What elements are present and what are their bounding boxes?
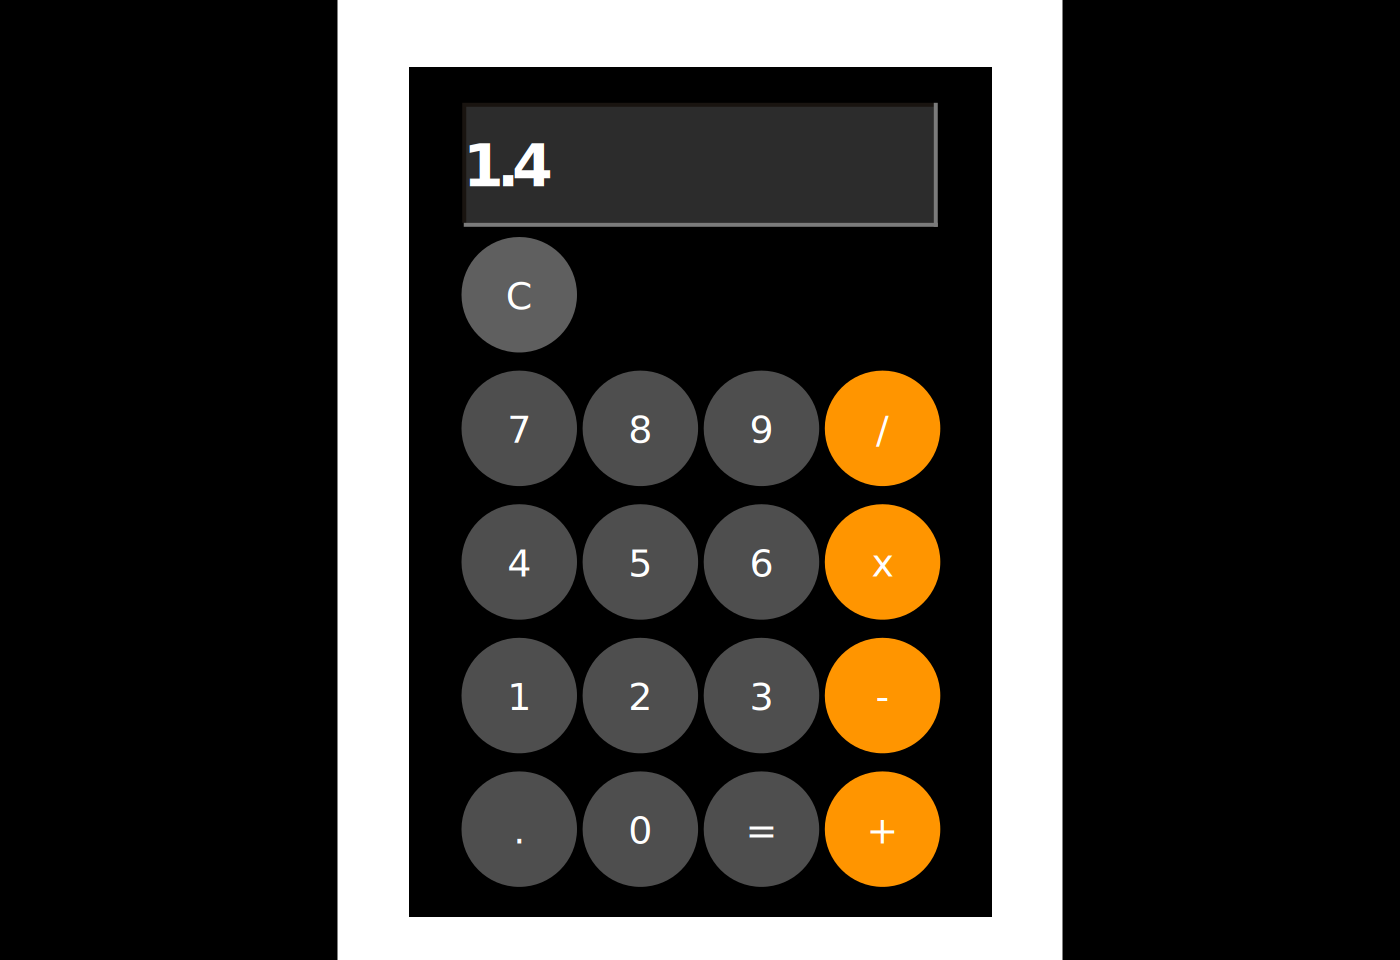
button[interactable]: Decimal point [461, 771, 577, 887]
button[interactable]: Multiply [825, 504, 940, 620]
staticText: 6 [749, 541, 773, 585]
staticText: / [876, 407, 889, 452]
button[interactable]: 1 [461, 638, 577, 753]
button[interactable]: Subtract [825, 638, 940, 753]
staticText: 4 [507, 541, 531, 585]
staticText: 9 [749, 407, 773, 452]
button[interactable]: Clear [461, 237, 577, 352]
button[interactable]: 2 [583, 638, 698, 753]
button[interactable]: 7 [461, 371, 577, 486]
button[interactable]: Divide [825, 371, 940, 486]
button[interactable]: 8 [583, 371, 698, 486]
staticText: = [745, 808, 777, 852]
staticText: 0 [628, 808, 652, 852]
staticText: 3 [749, 675, 773, 719]
staticText: + [866, 808, 898, 852]
button[interactable]: 4 [461, 504, 577, 620]
staticText: C [506, 274, 533, 318]
button[interactable]: 9 [704, 371, 819, 486]
staticText: x [871, 541, 893, 585]
staticText: 7 [507, 407, 531, 452]
button[interactable]: 5 [583, 504, 698, 620]
staticText: . [513, 808, 525, 852]
button[interactable]: 6 [704, 504, 819, 620]
staticText: - [875, 675, 889, 719]
button[interactable]: Add [825, 771, 940, 887]
staticText: 8 [628, 407, 652, 452]
staticText: 1.4 [463, 132, 553, 200]
staticText: 5 [628, 541, 652, 585]
staticText: 2 [628, 675, 652, 719]
button[interactable]: Equals [704, 771, 819, 887]
button[interactable]: 0 [583, 771, 698, 887]
button[interactable]: 3 [704, 638, 819, 753]
staticText: 1 [507, 675, 531, 719]
